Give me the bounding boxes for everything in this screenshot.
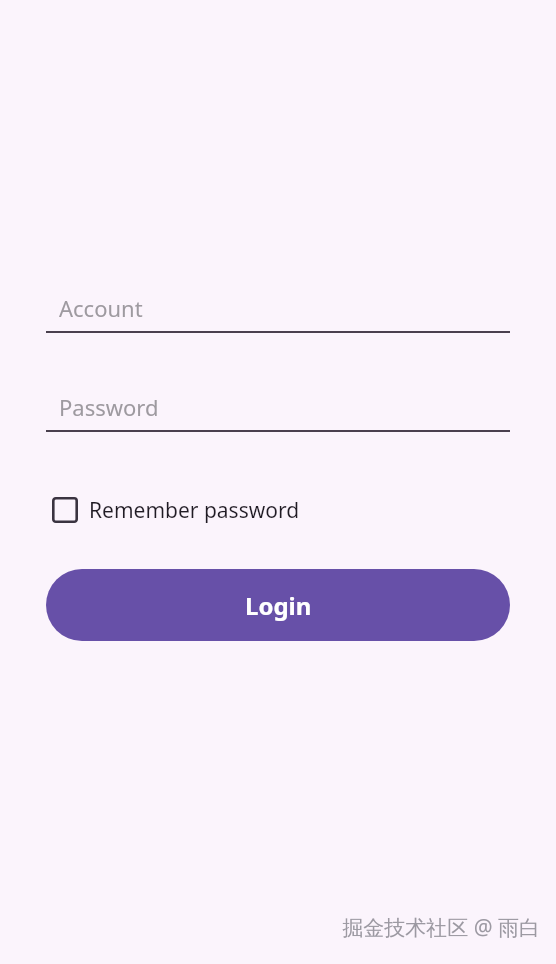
button[interactable]: Login: [46, 569, 510, 641]
staticText: Account: [59, 293, 143, 323]
staticText: Password: [59, 392, 159, 422]
staticText: Login: [245, 589, 312, 622]
staticText: Remember password: [89, 496, 300, 525]
button[interactable]: Account: [46, 285, 510, 333]
button[interactable]: Remember password checkbox: [46, 490, 300, 530]
button[interactable]: Password: [46, 384, 510, 432]
staticText: 掘金技术社区 @ 雨白: [342, 913, 540, 942]
